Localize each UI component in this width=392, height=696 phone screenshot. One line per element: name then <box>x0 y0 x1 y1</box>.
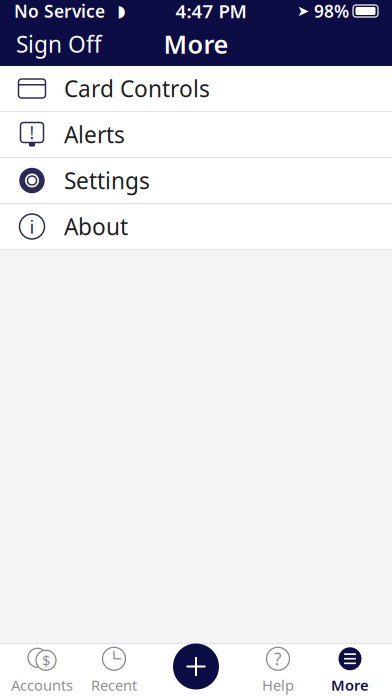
staticText: Alerts <box>64 119 125 149</box>
staticText: About <box>64 211 128 241</box>
button[interactable]: ? <box>242 645 314 695</box>
staticText: Settings <box>64 165 150 195</box>
staticText: Help <box>262 675 294 695</box>
staticText: Accounts <box>11 675 73 695</box>
staticText: ◗ <box>105 2 125 20</box>
button[interactable]: Recent <box>78 645 150 695</box>
staticText: ➤ <box>297 3 309 19</box>
button[interactable]: More <box>314 645 386 695</box>
staticText: 4:47 PM <box>175 0 246 23</box>
staticText: ? <box>274 647 282 670</box>
button[interactable]: Settings <box>0 158 392 204</box>
staticText: Recent <box>91 675 137 695</box>
staticText: $ <box>42 650 50 670</box>
staticText: 98% <box>309 0 349 22</box>
button[interactable]: Card Controls <box>0 66 392 112</box>
staticText: Card Controls <box>64 73 210 103</box>
button[interactable]: ! <box>0 112 392 158</box>
staticText: More <box>163 27 228 61</box>
button[interactable]: New transaction <box>173 643 219 689</box>
staticText: ! <box>29 121 34 144</box>
staticText: No Service <box>14 0 105 22</box>
button[interactable]: i <box>0 204 392 250</box>
button[interactable]: $ <box>6 645 78 695</box>
staticText: More <box>331 675 369 695</box>
staticText: Sign Off <box>16 29 102 59</box>
button[interactable]: Sign Off <box>0 22 118 66</box>
staticText: i <box>29 214 34 239</box>
